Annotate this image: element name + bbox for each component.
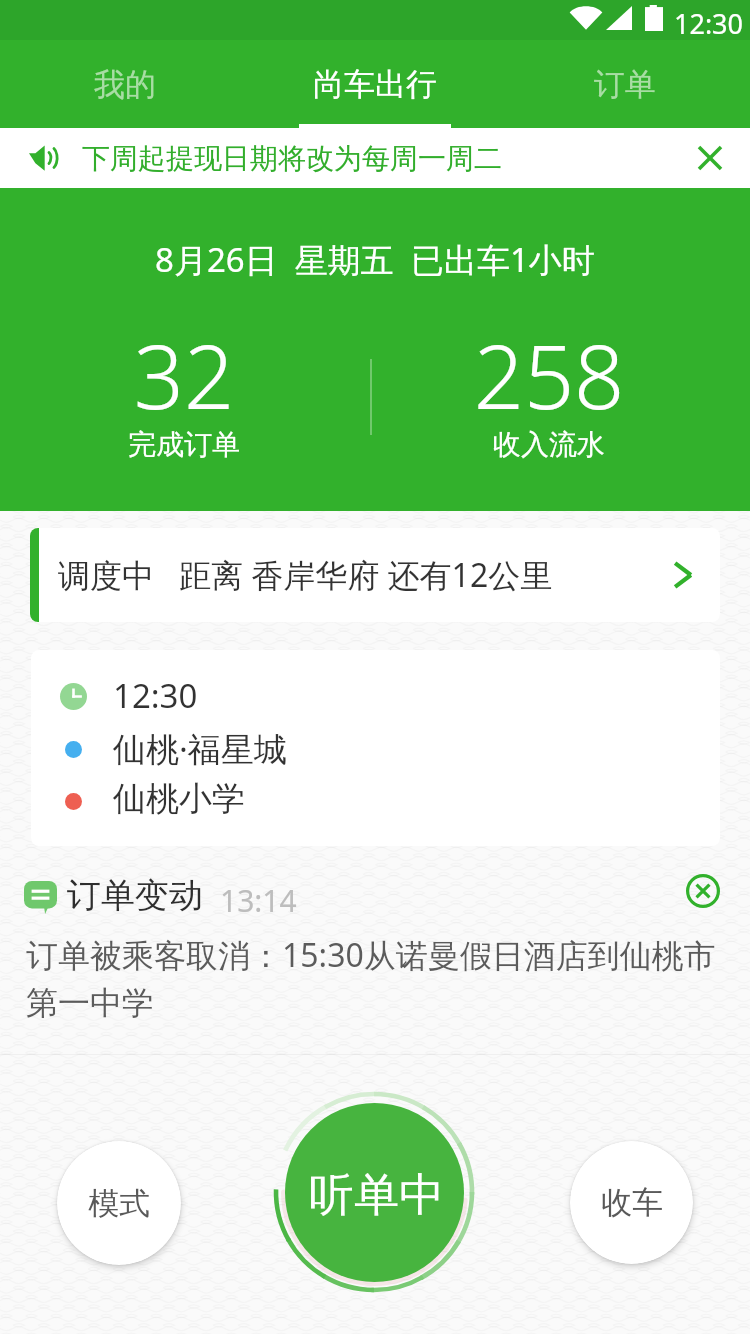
button[interactable]: 我的 [0,40,250,128]
button[interactable]: 收车 [570,1141,693,1264]
button[interactable]: 尚车出行 [250,40,500,128]
staticText: 订单变动 [67,874,203,917]
button[interactable]: 订单 [500,40,750,128]
button[interactable]: 听单中 [285,1103,464,1282]
button[interactable]: 12:30 [31,650,720,846]
staticText: 订单被乘客取消：15:30从诺曼假日酒店到仙桃市第一中学 [26,933,726,1024]
staticText: 听单中 [309,1167,444,1224]
button[interactable]: 关闭通知 [688,136,732,180]
staticText: 12:30 [674,5,744,42]
staticText: 8月26日 星期五 已出车1小时 [155,237,595,282]
button[interactable]: 模式 [57,1141,181,1265]
staticText: 我的 [94,65,156,104]
staticText: 13:14 [220,880,297,921]
staticText: 订单 [594,65,656,104]
staticText: 尚车出行 [313,65,437,104]
staticText: 收入流水 [429,427,669,462]
staticText: 258 [429,315,669,435]
button[interactable]: 调度中 距离 香岸华府 还有12公里 [30,528,720,622]
staticText: 调度中 距离 香岸华府 还有12公里 [58,553,553,597]
staticText: 收车 [601,1183,663,1222]
staticText: 下周起提现日期将改为每周一周二 [82,141,502,176]
button[interactable]: 关闭消息 [681,869,725,913]
staticText: 12:30 [113,673,198,718]
staticText: 仙桃·福星城 [113,726,287,771]
staticText: 模式 [88,1184,150,1223]
staticText: 完成订单 [64,427,304,462]
staticText: 32 [64,315,304,435]
staticText: 仙桃小学 [113,778,245,820]
